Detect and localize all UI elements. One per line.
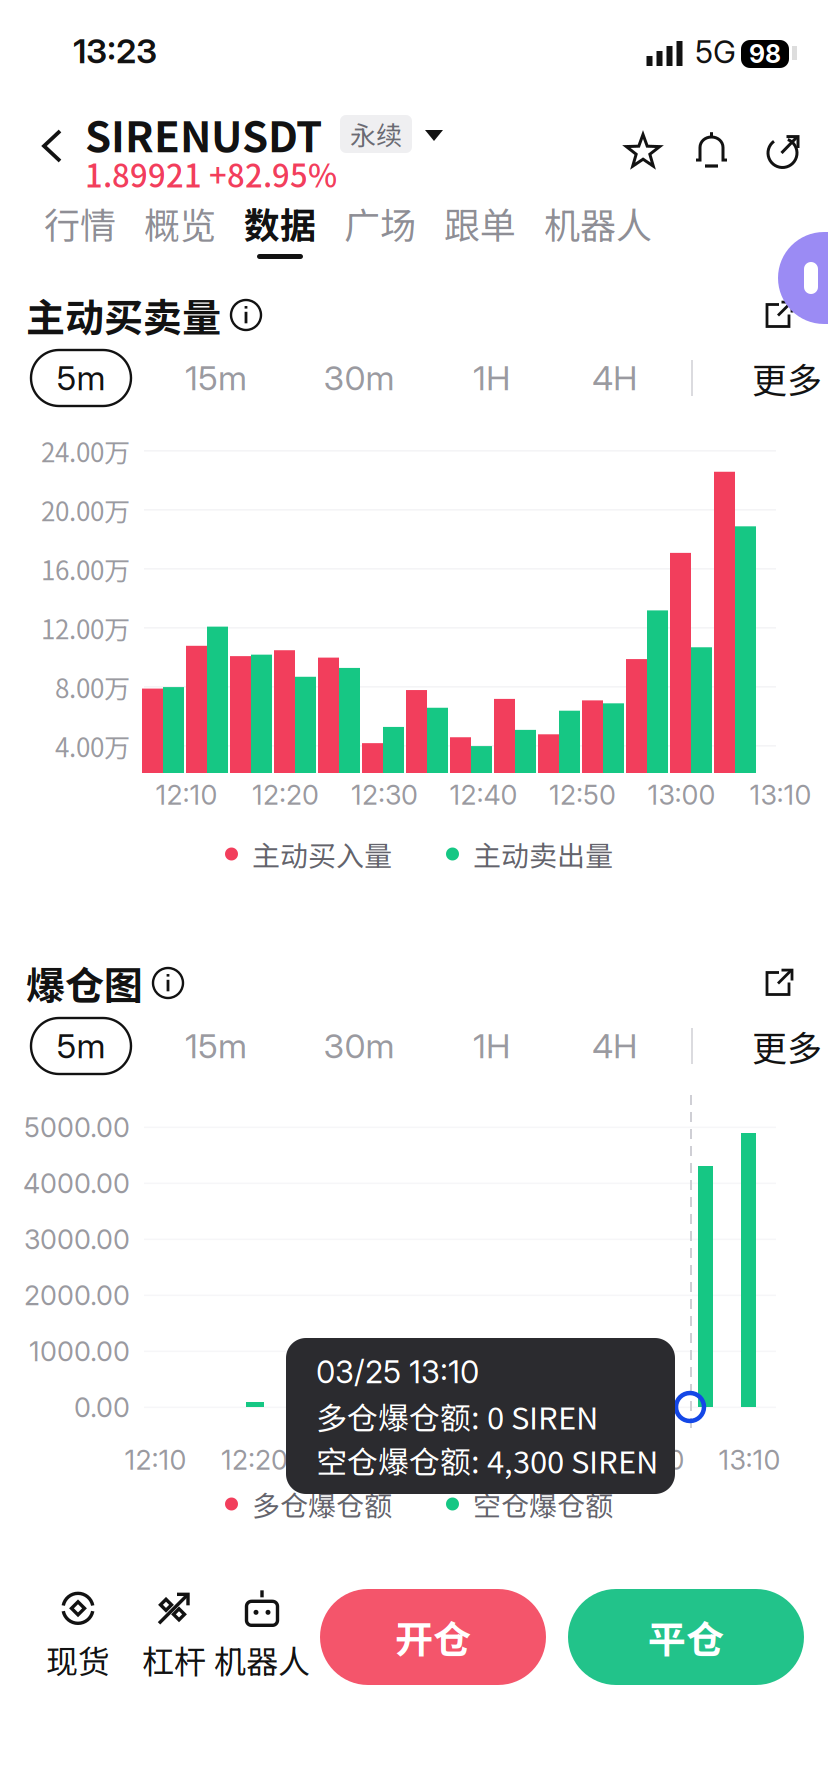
button[interactable]: Share — [765, 131, 803, 171]
button[interactable]: Open full chart — [763, 966, 796, 999]
button[interactable]: Back — [31, 115, 73, 177]
staticText: 12:50 — [549, 779, 616, 811]
staticText: 13:10 — [749, 779, 811, 811]
button[interactable]: 开仓 — [320, 1589, 546, 1685]
staticText: 12:40 — [449, 779, 517, 811]
staticText: 数据 — [244, 197, 316, 249]
button[interactable]: Open full chart — [763, 298, 796, 331]
staticText: 1000.00 — [29, 1335, 130, 1368]
button[interactable]: 永续 — [340, 115, 444, 153]
staticText: 5000.00 — [24, 1111, 130, 1144]
staticText: 12.00万 — [41, 609, 130, 647]
button[interactable]: 1H — [432, 1018, 552, 1074]
staticText: 4H — [592, 357, 638, 398]
button[interactable]: 概览 — [130, 200, 230, 259]
button[interactable]: 机器人 — [206, 1584, 318, 1688]
staticText: 5m — [56, 357, 105, 398]
staticText: 跟单 — [444, 197, 516, 249]
staticText: 概览 — [144, 197, 216, 249]
staticText: 5G — [695, 33, 736, 71]
button[interactable]: 4H — [555, 1018, 675, 1074]
staticText: 爆仓图 — [26, 955, 143, 1011]
button[interactable]: 杠杆 — [126, 1584, 222, 1688]
staticText: 主动买入量 — [252, 834, 392, 874]
staticText: 13:00 — [647, 779, 715, 811]
staticText: 0.00 — [74, 1391, 130, 1424]
button[interactable]: 15m — [156, 350, 276, 406]
button[interactable]: 数据 — [230, 200, 330, 259]
button[interactable]: 30m — [299, 1018, 419, 1074]
button[interactable]: AI assistant — [778, 232, 828, 324]
staticText: 12:10 — [155, 779, 217, 811]
staticText: 主动买卖量 — [26, 287, 221, 343]
staticText: 4.00万 — [55, 727, 130, 765]
button[interactable]: 1H — [432, 350, 552, 406]
staticText: 4H — [592, 1025, 638, 1066]
button[interactable]: 跟单 — [430, 200, 530, 259]
button[interactable]: 平仓 — [568, 1589, 804, 1685]
staticText: 2000.00 — [24, 1279, 130, 1312]
staticText: 1.89921 +82.95% — [85, 152, 337, 196]
button[interactable]: 30m — [299, 350, 419, 406]
button[interactable]: 更多 — [752, 1018, 828, 1074]
staticText: 13:00 — [616, 1444, 684, 1476]
staticText: 30m — [323, 1025, 394, 1066]
staticText: 12:20 — [221, 1444, 288, 1476]
staticText: 1H — [473, 1025, 511, 1066]
button[interactable]: 行情 — [30, 200, 130, 259]
staticText: 广场 — [344, 197, 416, 249]
button[interactable]: 机器人 — [530, 200, 666, 259]
button[interactable]: Price alert — [693, 131, 731, 171]
staticText: 16.00万 — [41, 550, 130, 588]
staticText: 4000.00 — [23, 1167, 130, 1200]
staticText: 更多 — [752, 1021, 822, 1071]
staticText: 永续 — [350, 115, 402, 153]
staticText: 12:10 — [124, 1444, 186, 1476]
staticText: 98 — [749, 39, 781, 69]
staticText: 8.00万 — [55, 668, 130, 706]
staticText: 空仓爆仓额 — [473, 1484, 613, 1524]
staticText: 多仓爆仓额: 0 SIREN — [316, 1394, 598, 1438]
staticText: 24.00万 — [41, 432, 130, 470]
staticText: 5m — [56, 1025, 105, 1066]
staticText: 12:30 — [351, 779, 418, 811]
staticText: 空仓爆仓额: 4,300 SIREN — [316, 1438, 658, 1482]
button[interactable]: 5m — [31, 350, 131, 406]
staticText: 多仓爆仓额 — [252, 1484, 392, 1524]
button[interactable]: 更多 — [752, 350, 828, 406]
staticText: 杠杆 — [142, 1636, 206, 1683]
staticText: 现货 — [46, 1636, 110, 1683]
staticText: SIRENUSDT — [85, 104, 322, 164]
staticText: 12:30 — [320, 1444, 387, 1476]
staticText: 20.00万 — [41, 491, 130, 529]
staticText: 平仓 — [648, 1609, 724, 1664]
staticText: 机器人 — [544, 197, 652, 249]
button[interactable]: 4H — [555, 350, 675, 406]
staticText: 03/25 13:10 — [316, 1353, 479, 1391]
staticText: 开仓 — [395, 1609, 471, 1664]
staticText: 主动卖出量 — [473, 834, 613, 874]
staticText: 13:10 — [718, 1444, 780, 1476]
staticText: 1H — [473, 357, 511, 398]
button[interactable]: Favorite — [624, 132, 662, 172]
button[interactable]: 广场 — [330, 200, 430, 259]
staticText: 行情 — [44, 197, 116, 249]
staticText: 3000.00 — [24, 1223, 130, 1256]
staticText: 更多 — [752, 353, 822, 403]
staticText: 15m — [185, 1025, 247, 1066]
staticText: 12:20 — [252, 779, 319, 811]
staticText: 30m — [323, 357, 394, 398]
button[interactable]: 5m — [31, 1018, 131, 1074]
button[interactable]: 15m — [156, 1018, 276, 1074]
staticText: 13:23 — [73, 30, 157, 71]
staticText: 12:40 — [418, 1444, 486, 1476]
button[interactable]: 现货 — [30, 1584, 126, 1688]
staticText: 机器人 — [214, 1636, 310, 1683]
staticText: 12:50 — [518, 1444, 585, 1476]
staticText: 15m — [185, 357, 247, 398]
